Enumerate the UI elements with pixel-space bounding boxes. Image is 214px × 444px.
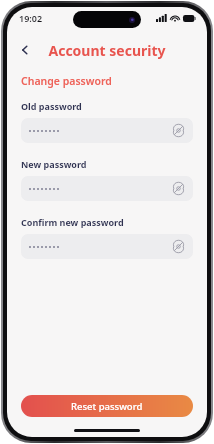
staticText: 19:02: [19, 12, 43, 24]
staticText: Old password: [21, 100, 82, 112]
button[interactable]: Back: [14, 39, 36, 61]
button[interactable]: Show password: [21, 118, 193, 143]
button[interactable]: Show password: [170, 238, 187, 255]
button[interactable]: Show password: [170, 122, 187, 139]
button[interactable]: Show password: [170, 180, 187, 197]
button[interactable]: Reset password: [21, 395, 193, 417]
staticText: Reset password: [71, 400, 143, 413]
staticText: Account security: [48, 41, 166, 60]
button[interactable]: Show password: [21, 176, 193, 201]
staticText: Change password: [21, 74, 112, 88]
button[interactable]: Show password: [21, 234, 193, 259]
staticText: Confirm new password: [21, 216, 124, 228]
staticText: New password: [21, 158, 87, 170]
